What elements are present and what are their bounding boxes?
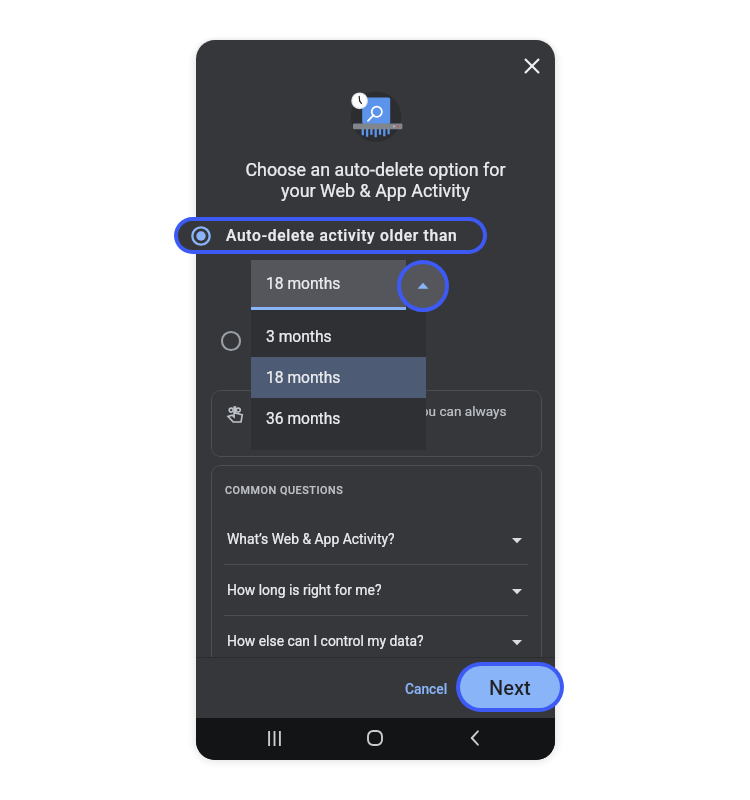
button[interactable]: 18 months bbox=[251, 357, 426, 398]
button[interactable]: Close bbox=[512, 46, 552, 86]
button[interactable] bbox=[251, 260, 406, 307]
button[interactable]: Collapse menu bbox=[397, 260, 449, 312]
button[interactable]: 36 months bbox=[251, 398, 426, 439]
button[interactable]: How else can I control my data? bbox=[224, 616, 528, 666]
button[interactable]: Keep activity until I delete it manually bbox=[214, 323, 527, 359]
staticText: Next bbox=[489, 676, 531, 699]
staticText: Auto-delete activity older than bbox=[226, 227, 458, 245]
button[interactable]: 3 months bbox=[251, 316, 426, 357]
staticText: 3 months bbox=[266, 328, 332, 346]
button[interactable]: Cancel bbox=[390, 669, 462, 709]
staticText: 18 months bbox=[266, 369, 341, 387]
button[interactable]: Home bbox=[353, 717, 397, 759]
button[interactable]: Recent apps bbox=[252, 717, 296, 759]
button[interactable]: Back bbox=[453, 717, 497, 759]
staticText: Cancel bbox=[405, 681, 448, 697]
staticText: 36 months bbox=[266, 410, 341, 428]
button[interactable]: How long is right for me? bbox=[224, 565, 528, 615]
staticText: COMMON QUESTIONS bbox=[225, 484, 344, 497]
button[interactable]: Next bbox=[460, 666, 560, 708]
button[interactable]: What’s Web & App Activity? bbox=[224, 514, 528, 564]
staticText: 18 months bbox=[266, 275, 341, 293]
staticText: If you change your mind, you can always bbox=[264, 403, 507, 419]
button[interactable]: Auto-delete activity older than bbox=[178, 221, 483, 250]
button[interactable]: If you change your mind, you can always bbox=[211, 390, 542, 457]
staticText: How else can I control my data? bbox=[227, 633, 424, 649]
staticText: Choose an auto-delete option for your We… bbox=[245, 159, 506, 202]
staticText: How long is right for me? bbox=[227, 582, 382, 598]
staticText: What’s Web & App Activity? bbox=[227, 531, 395, 547]
